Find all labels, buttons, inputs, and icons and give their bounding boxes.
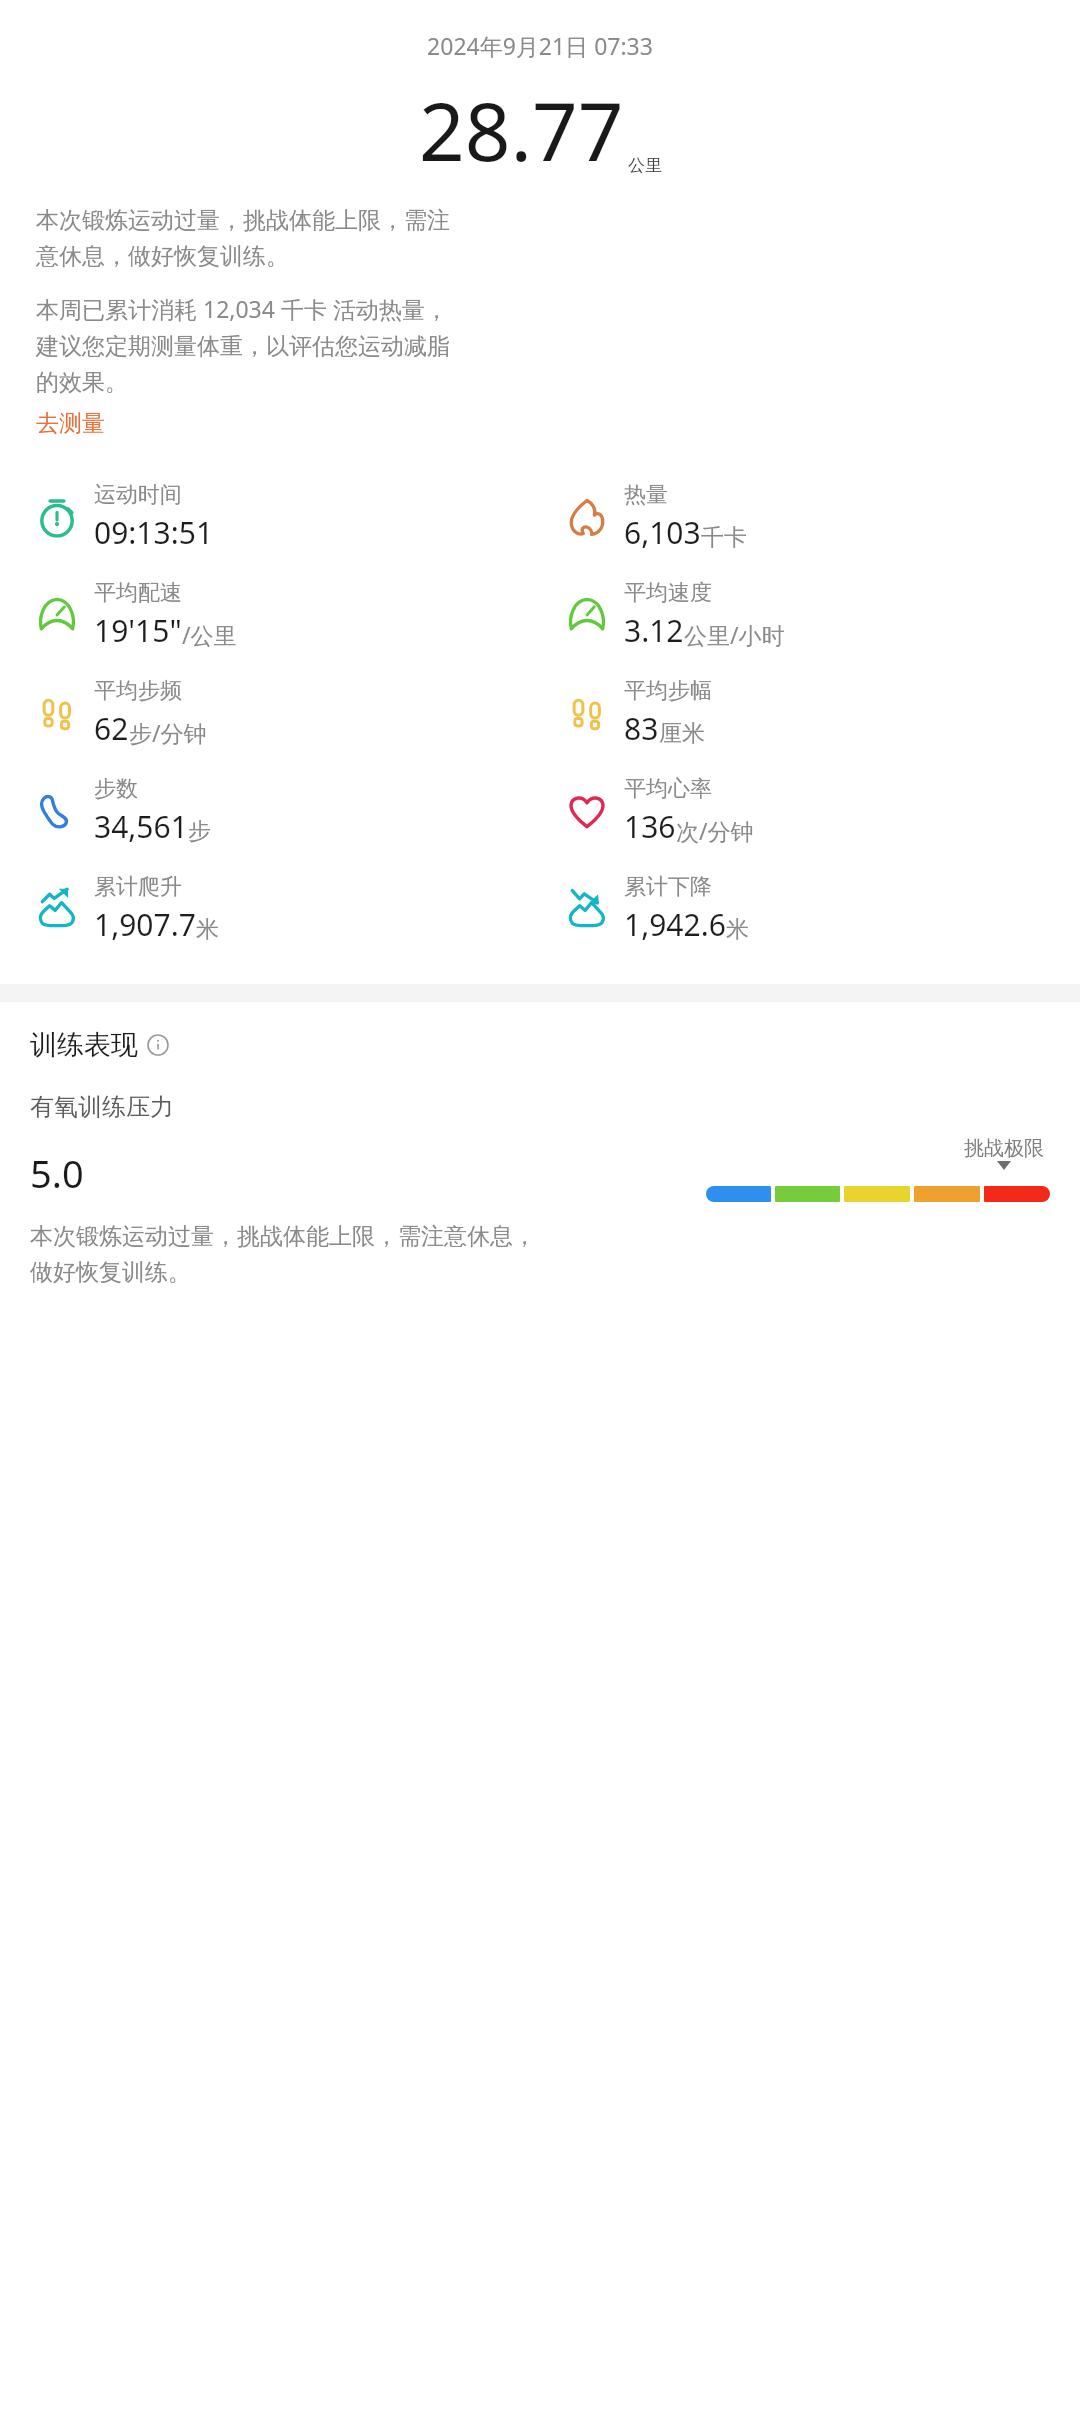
staticText: 平均心率	[624, 775, 712, 803]
other: Steps	[34, 690, 80, 736]
other: Step count	[34, 788, 80, 834]
staticText: 千卡	[701, 523, 747, 552]
button[interactable]: 训练表现	[30, 1028, 169, 1062]
staticText: 有氧训练压力	[30, 1092, 174, 1122]
staticText: 83	[624, 708, 659, 749]
staticText: 步	[188, 817, 211, 846]
staticText: 19'15"	[94, 610, 182, 651]
button[interactable]: Total descent	[564, 860, 1080, 958]
staticText: 挑战极限	[964, 1136, 1044, 1161]
staticText: 6,103	[624, 512, 701, 553]
other: Calories	[564, 494, 610, 540]
staticText: 热量	[624, 481, 668, 509]
staticText: 平均步频	[94, 677, 182, 705]
staticText: /公里	[182, 619, 237, 650]
staticText: 本次锻炼运动过量，挑战体能上限，需注 意休息，做好恢复训练。	[36, 206, 450, 271]
other: Duration	[34, 494, 80, 540]
button[interactable]: Total ascent	[34, 860, 540, 958]
staticText: 米	[196, 915, 219, 944]
staticText: 平均速度	[624, 579, 712, 607]
staticText: 2024年9月21日 07:33	[0, 30, 1080, 61]
staticText: 次/分钟	[676, 815, 754, 846]
button[interactable]: Steps	[564, 664, 1080, 762]
staticText: 1,907.7	[94, 904, 196, 945]
staticText: 5.0	[30, 1147, 84, 1199]
staticText: 公里/小时	[684, 619, 785, 650]
staticText: 厘米	[659, 719, 705, 748]
staticText: 累计爬升	[94, 873, 182, 901]
staticText: 步数	[94, 775, 138, 803]
staticText: 米	[726, 915, 749, 944]
button[interactable]: Duration	[34, 468, 540, 566]
staticText: 本次锻炼运动过量，挑战体能上限，需注意休息， 做好恢复训练。	[30, 1222, 536, 1287]
staticText: 运动时间	[94, 481, 182, 509]
staticText: 62	[94, 708, 129, 749]
staticText: 136	[624, 806, 676, 847]
staticText: 1,942.6	[624, 904, 726, 945]
other: Info	[147, 1034, 169, 1056]
staticText: 平均配速	[94, 579, 182, 607]
button[interactable]: Average speed	[564, 566, 1080, 664]
button[interactable]: 去测量	[36, 405, 105, 442]
staticText: 公里	[628, 155, 662, 176]
button[interactable]: Step count	[34, 762, 540, 860]
button[interactable]: Heart rate	[564, 762, 1080, 860]
staticText: 28.77	[419, 75, 624, 184]
staticText: 3.12	[624, 610, 684, 651]
button[interactable]: Average pace	[34, 566, 540, 664]
other: Average pace	[34, 592, 80, 638]
staticText: 34,561	[94, 806, 188, 847]
other: Average speed	[564, 592, 610, 638]
staticText: 本周已累计消耗 12,034 千卡 活动热量， 建议您定期测量体重，以评估您运动…	[36, 293, 450, 397]
staticText: 训练表现	[30, 1028, 138, 1062]
other: Heart rate	[564, 788, 610, 834]
staticText: 平均步幅	[624, 677, 712, 705]
other: Total ascent	[34, 886, 80, 932]
staticText: 09:13:51	[94, 512, 214, 553]
other: Total descent	[564, 886, 610, 932]
staticText: 去测量	[36, 409, 105, 438]
staticText: 累计下降	[624, 873, 712, 901]
staticText: 步/分钟	[129, 717, 207, 748]
other: Steps	[564, 690, 610, 736]
button[interactable]: Steps	[34, 664, 540, 762]
button[interactable]: Calories	[564, 468, 1080, 566]
